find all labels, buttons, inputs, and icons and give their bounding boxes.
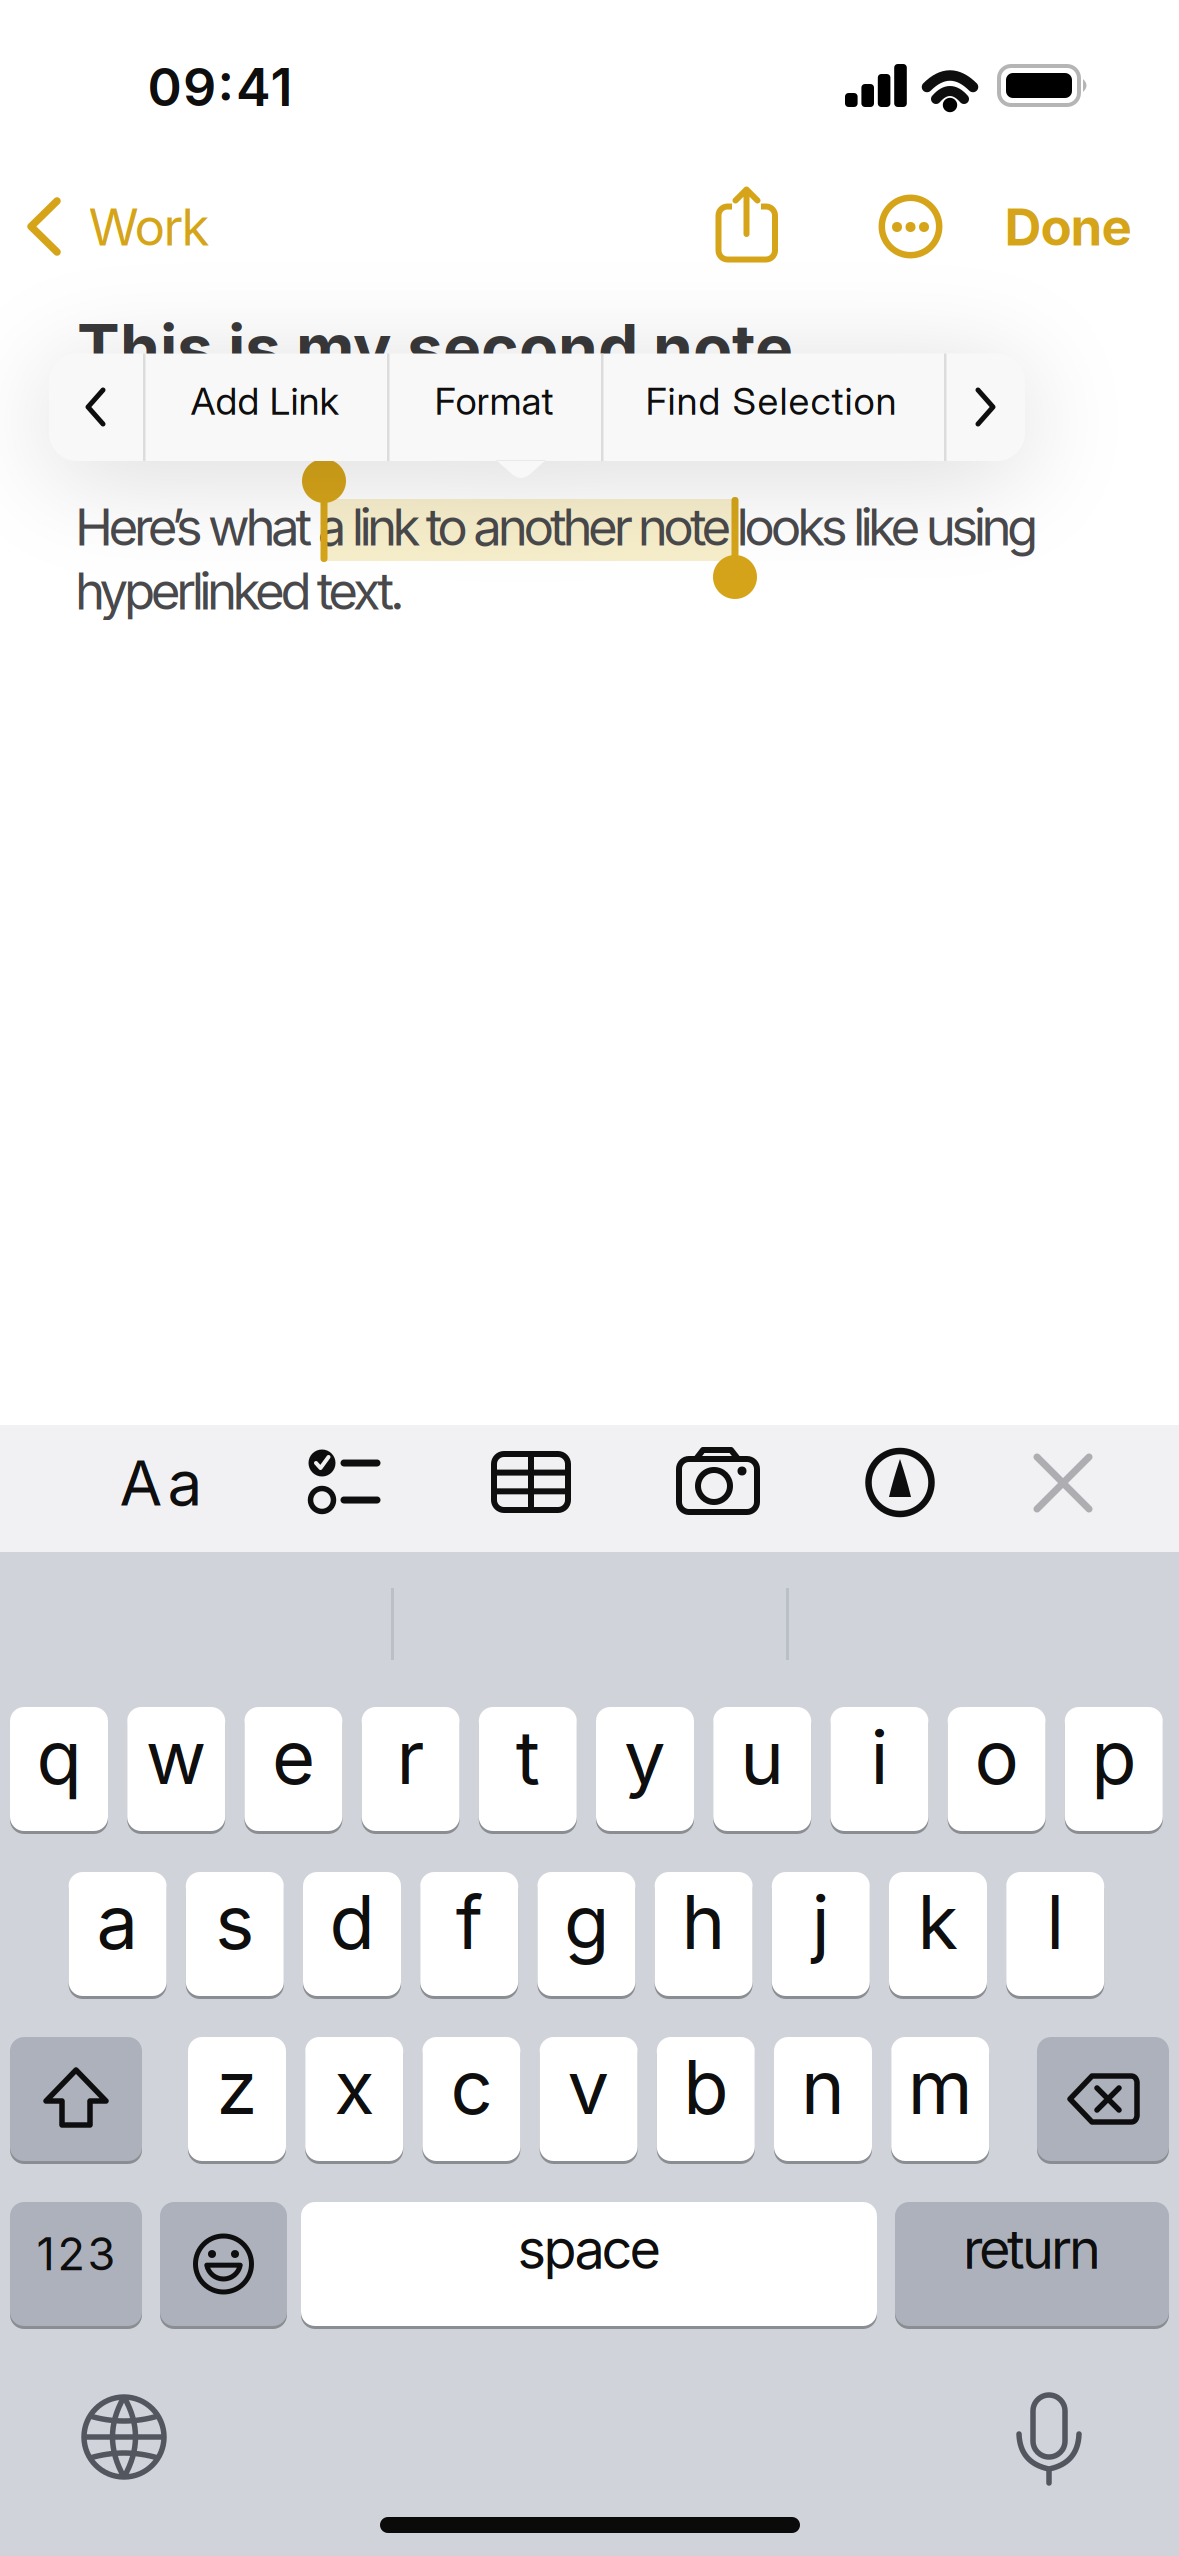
staticText: e <box>272 1712 315 1802</box>
button[interactable]: Next keyboard <box>76 2389 172 2485</box>
staticText: Find Selection <box>645 378 896 424</box>
staticText: w <box>146 1712 207 1802</box>
staticText: Done <box>1004 196 1131 258</box>
staticText: Work <box>88 196 209 258</box>
staticText: x <box>334 2042 374 2132</box>
button[interactable]: Dismiss keyboard <box>1031 1451 1095 1515</box>
button[interactable]: z <box>188 2037 286 2161</box>
button[interactable]: j <box>772 1872 870 1996</box>
button[interactable]: o <box>948 1707 1046 1831</box>
button[interactable]: More menu items <box>957 372 1013 442</box>
staticText: m <box>908 2042 973 2132</box>
button[interactable]: q <box>10 1707 108 1831</box>
staticText: s <box>215 1877 254 1967</box>
button[interactable]: a <box>69 1872 167 1996</box>
button[interactable]: Delete <box>1037 2037 1169 2161</box>
staticText: q <box>36 1712 81 1802</box>
button[interactable]: Shift <box>10 2037 142 2161</box>
button[interactable]: s <box>186 1872 284 1996</box>
staticText: hyperlinked text. <box>75 560 405 622</box>
staticText: g <box>564 1877 609 1967</box>
staticText: Here’s what a link to another note looks… <box>75 496 1038 558</box>
staticText: This is my second note <box>77 309 793 386</box>
button[interactable]: e <box>244 1707 342 1831</box>
button[interactable]: p <box>1065 1707 1163 1831</box>
staticText: return <box>963 2216 1101 2282</box>
staticText: n <box>801 2042 845 2132</box>
button[interactable]: Done <box>1004 196 1131 258</box>
staticText: j <box>812 1877 830 1967</box>
staticText: Add Link <box>190 378 339 424</box>
button[interactable]: v <box>540 2037 638 2161</box>
button[interactable]: More options <box>872 188 948 264</box>
staticText: h <box>682 1877 726 1967</box>
button[interactable]: c <box>422 2037 520 2161</box>
button[interactable]: Table <box>489 1449 573 1515</box>
staticText: r <box>397 1712 425 1802</box>
staticText: l <box>1046 1877 1064 1967</box>
button[interactable]: Text formatting <box>119 1445 202 1520</box>
button[interactable]: Share <box>712 183 782 266</box>
staticText: y <box>624 1712 666 1802</box>
button[interactable]: x <box>305 2037 403 2161</box>
staticText: Format <box>434 378 553 424</box>
staticText: v <box>568 2042 610 2132</box>
staticText: k <box>917 1877 958 1967</box>
button[interactable]: d <box>303 1872 401 1996</box>
button[interactable]: m <box>891 2037 989 2161</box>
button[interactable]: k <box>889 1872 987 1996</box>
button[interactable]: l <box>1006 1872 1104 1996</box>
button[interactable]: Emoji <box>160 2202 287 2326</box>
button[interactable]: u <box>713 1707 811 1831</box>
staticText: u <box>740 1712 784 1802</box>
staticText: space <box>517 2216 660 2282</box>
staticText: Aa <box>119 1445 202 1520</box>
button[interactable]: 123 <box>10 2202 142 2326</box>
staticText: 09:41 <box>147 55 292 118</box>
staticText: p <box>1091 1712 1136 1802</box>
button[interactable]: g <box>537 1872 635 1996</box>
button[interactable]: r <box>362 1707 460 1831</box>
button[interactable]: i <box>830 1707 928 1831</box>
button[interactable]: Previous menu items <box>68 372 124 442</box>
button[interactable]: w <box>127 1707 225 1831</box>
button[interactable]: n <box>774 2037 872 2161</box>
staticText: c <box>450 2042 492 2132</box>
button[interactable]: return <box>895 2202 1169 2326</box>
button[interactable]: Back to Work folder <box>25 189 215 264</box>
button[interactable]: f <box>420 1872 518 1996</box>
button[interactable]: Markup <box>863 1445 937 1519</box>
button[interactable]: Insert photo <box>674 1445 762 1515</box>
button[interactable]: t <box>479 1707 577 1831</box>
button[interactable]: Format <box>434 378 553 424</box>
button[interactable]: y <box>596 1707 694 1831</box>
button[interactable]: Dictate <box>1009 2389 1089 2489</box>
staticText: d <box>329 1877 374 1967</box>
staticText: a <box>97 1877 139 1967</box>
staticText: b <box>683 2042 728 2132</box>
button[interactable]: space <box>301 2202 877 2326</box>
staticText: t <box>516 1712 540 1802</box>
staticText: f <box>456 1877 483 1967</box>
button[interactable]: h <box>655 1872 753 1996</box>
button[interactable]: b <box>657 2037 755 2161</box>
staticText: o <box>975 1712 1019 1802</box>
staticText: i <box>870 1712 888 1802</box>
button[interactable]: Find Selection <box>645 378 896 424</box>
staticText: z <box>216 2042 257 2132</box>
button[interactable]: Checklist <box>304 1446 384 1516</box>
staticText: 123 <box>36 2227 115 2281</box>
button[interactable]: Add Link <box>190 378 339 424</box>
